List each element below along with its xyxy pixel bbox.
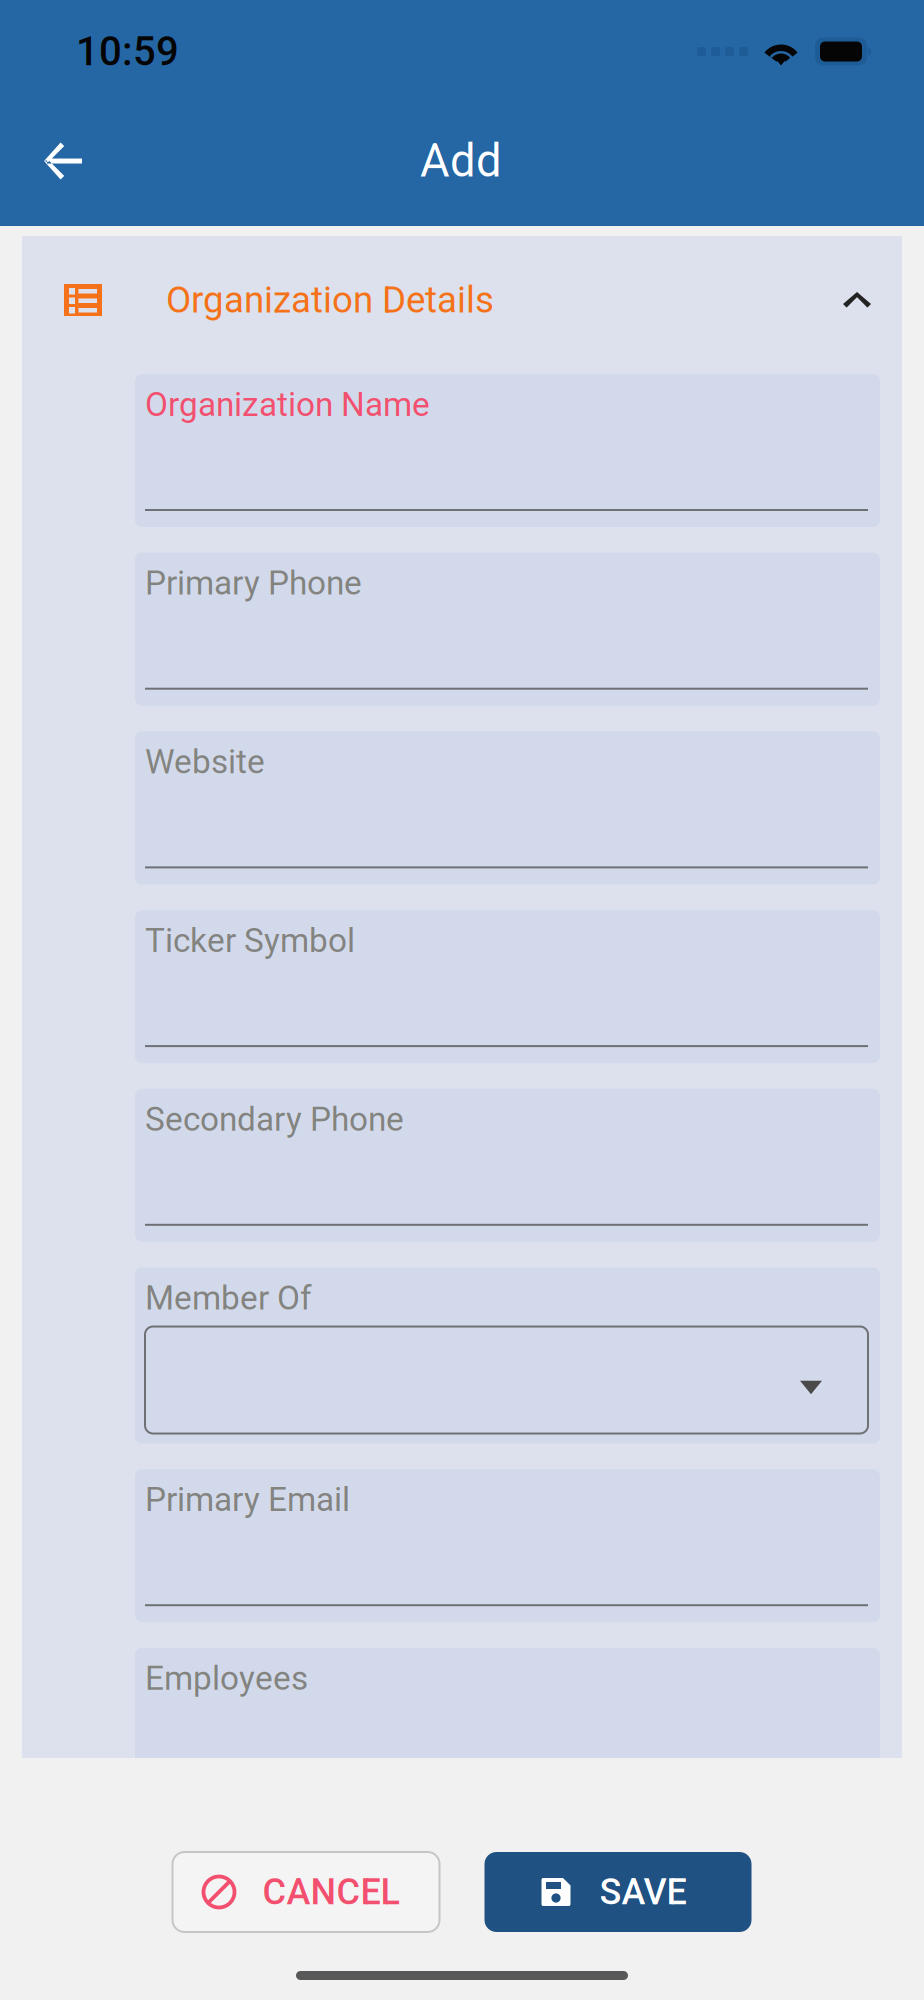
button[interactable]: Secondary Phone [135,1089,880,1242]
staticText: CANCEL [262,1871,399,1913]
button[interactable]: Back [0,106,112,216]
staticText: Primary Phone [145,564,362,603]
staticText: SAVE [599,1871,686,1913]
button[interactable]: Website [135,731,880,884]
staticText: Website [145,742,265,781]
staticText: Ticker Symbol [145,921,355,960]
button[interactable]: Primary Phone [135,553,880,706]
staticText: Employees [145,1659,308,1698]
button[interactable]: Organization Name [135,374,880,527]
staticText: Member Of [145,1278,312,1318]
button[interactable]: Ticker Symbol [135,910,880,1063]
button[interactable]: Organization Details [22,236,902,374]
staticText: Primary Email [145,1480,350,1519]
button[interactable]: CANCEL [172,1852,439,1932]
staticText: Secondary Phone [145,1100,404,1139]
staticText: Organization Name [145,385,430,424]
button[interactable]: Member Of [135,1267,880,1443]
button[interactable]: Employees [135,1648,880,1801]
staticText: Add [420,134,502,187]
button[interactable]: SAVE [484,1852,751,1932]
button[interactable]: Primary Email [135,1469,880,1622]
staticText: 10:59 [76,28,179,75]
staticText: Organization Details [166,278,494,321]
